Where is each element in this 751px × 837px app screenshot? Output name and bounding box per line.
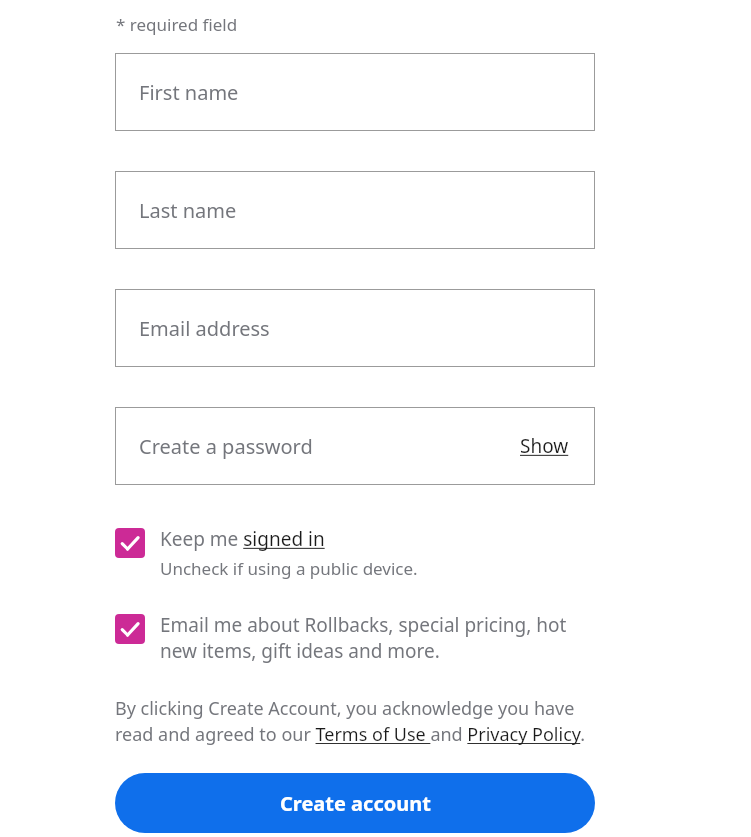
staticText: Show <box>520 433 569 459</box>
staticText: By clicking Create Account, you acknowle… <box>115 696 595 747</box>
staticText: Create account <box>280 790 431 817</box>
button[interactable]: First name <box>115 53 595 131</box>
staticText: Keep me signed in <box>160 526 325 552</box>
button[interactable]: Last name <box>115 171 595 249</box>
staticText: Create a password <box>139 433 313 460</box>
button[interactable]: Email address <box>115 289 595 367</box>
button[interactable]: Show <box>518 427 571 465</box>
button[interactable]: Keep me signed in <box>115 526 595 580</box>
staticText: Email address <box>139 315 270 342</box>
button[interactable]: Email me about Rollbacks, special pricin… <box>115 612 595 664</box>
staticText: * required field <box>116 13 238 36</box>
staticText: Email me about Rollbacks, special pricin… <box>160 612 595 664</box>
button[interactable]: Create a password <box>115 407 595 485</box>
button[interactable]: Create account <box>115 773 595 833</box>
staticText: Last name <box>139 197 237 224</box>
staticText: Uncheck if using a public device. <box>160 557 418 580</box>
staticText: First name <box>139 79 239 106</box>
